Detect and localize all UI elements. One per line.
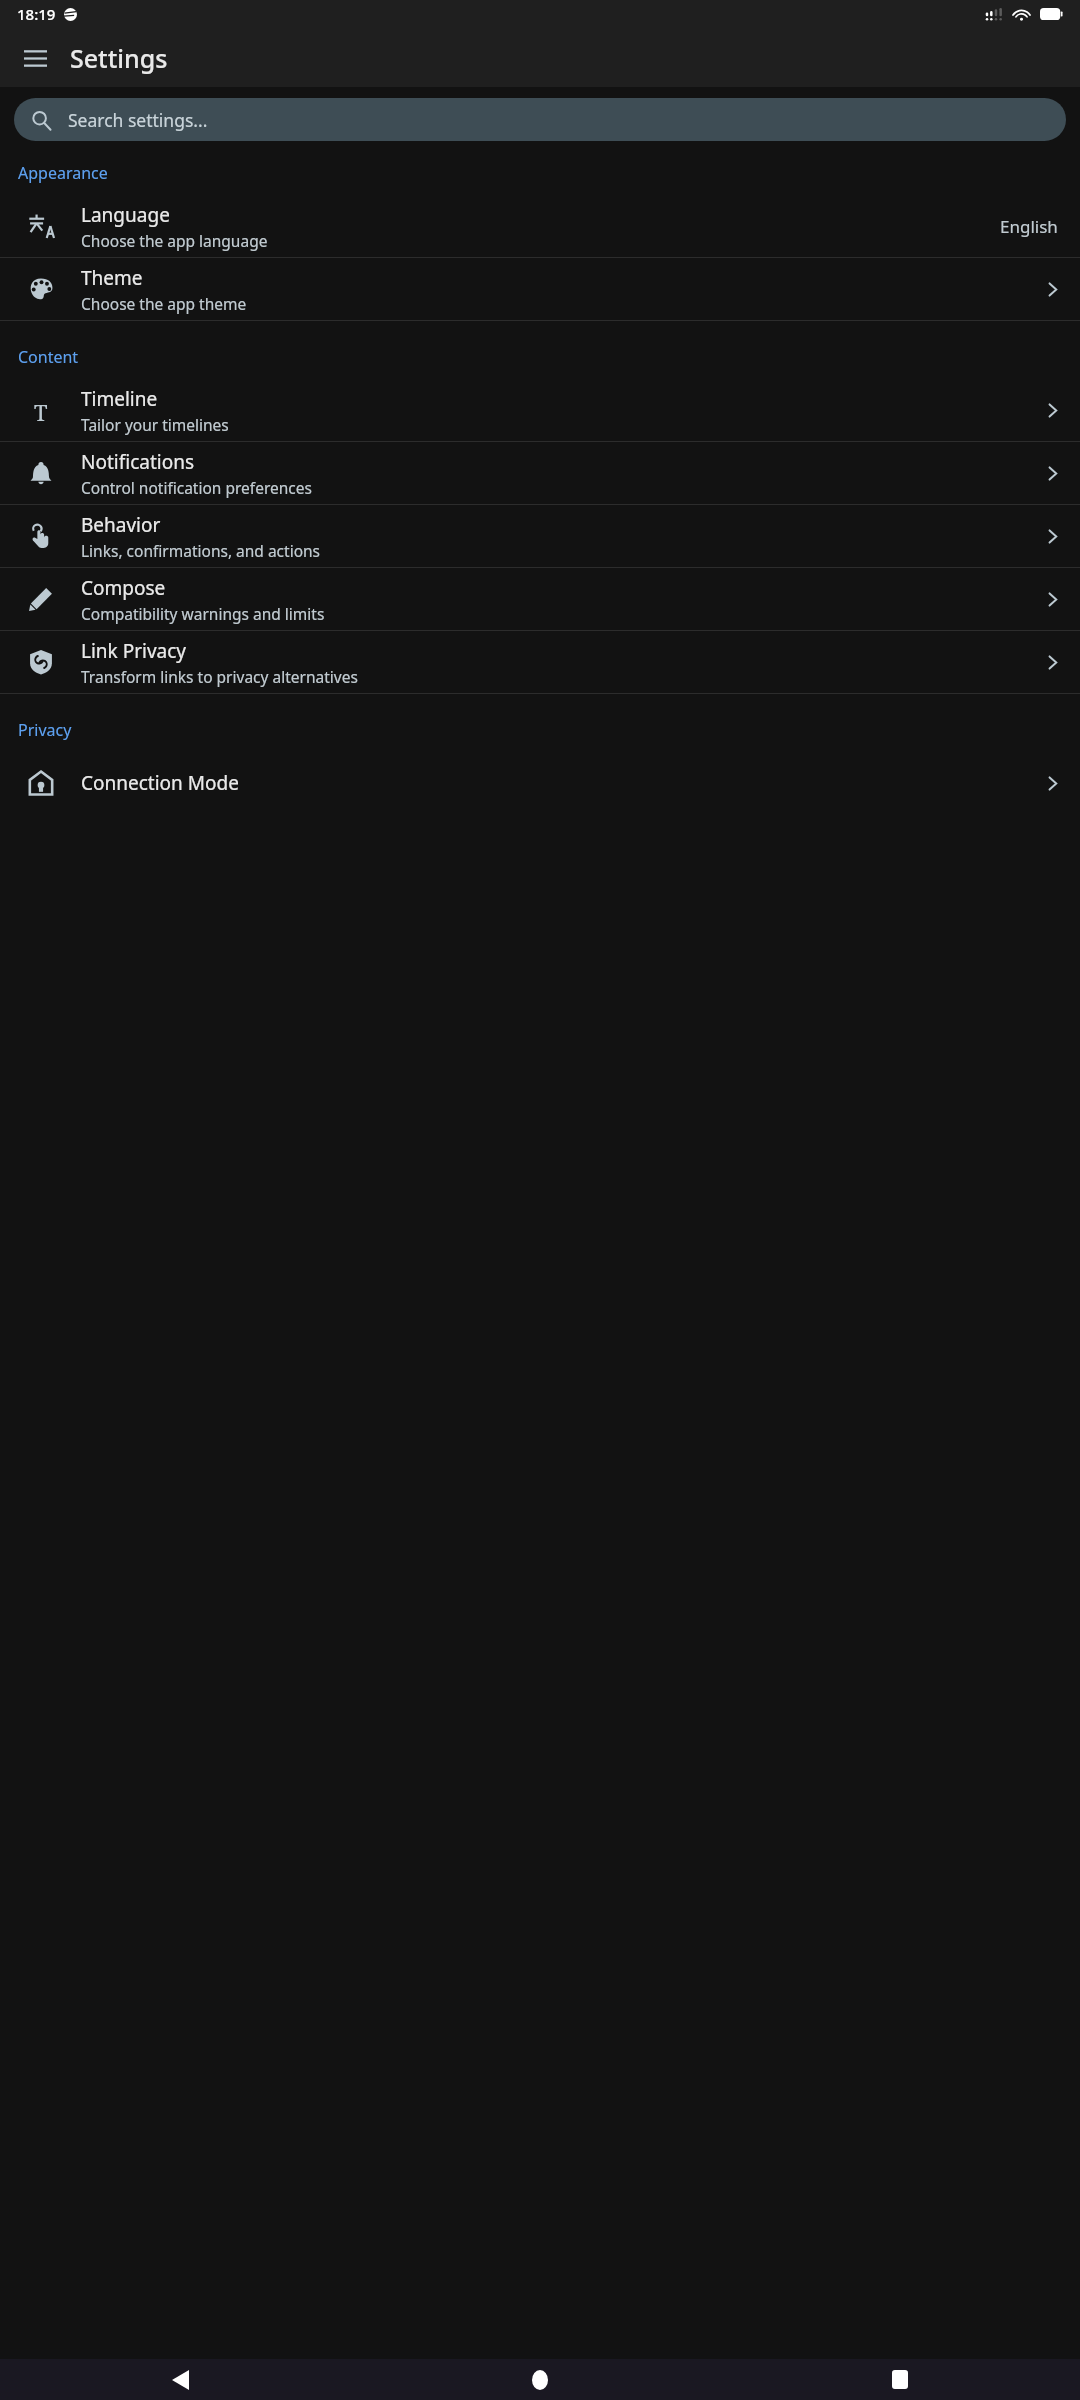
- staticText: Choose the app theme: [81, 293, 247, 314]
- staticText: Search settings...: [68, 108, 208, 132]
- staticText: English: [1000, 215, 1058, 238]
- button[interactable]: Theme: [0, 258, 1080, 320]
- button[interactable]: Link Privacy: [0, 631, 1080, 693]
- staticText: Privacy: [18, 719, 72, 741]
- button[interactable]: Connection Mode: [0, 752, 1080, 814]
- staticText: Tailor your timelines: [81, 414, 229, 435]
- button[interactable]: Home: [360, 2359, 720, 2400]
- staticText: Theme: [81, 265, 143, 291]
- button[interactable]: Compose: [0, 568, 1080, 630]
- button[interactable]: Recent apps: [720, 2359, 1080, 2400]
- staticText: Notifications: [81, 449, 195, 475]
- button[interactable]: T: [0, 379, 1080, 441]
- staticText: Behavior: [81, 512, 161, 538]
- button[interactable]: Back: [0, 2359, 360, 2400]
- staticText: Settings: [70, 41, 168, 75]
- staticText: Transform links to privacy alternatives: [81, 666, 358, 687]
- button[interactable]: Open navigation menu: [11, 34, 59, 82]
- staticText: Choose the app language: [81, 230, 268, 251]
- staticText: 18:19: [17, 4, 56, 24]
- staticText: Control notification preferences: [81, 477, 312, 498]
- staticText: Links, confirmations, and actions: [81, 540, 321, 561]
- button[interactable]: Behavior: [0, 505, 1080, 567]
- staticText: Appearance: [18, 162, 108, 184]
- staticText: Content: [18, 346, 79, 368]
- staticText: Link Privacy: [81, 638, 187, 664]
- staticText: Language: [81, 202, 170, 228]
- button[interactable]: Notifications: [0, 442, 1080, 504]
- button[interactable]: Language: [0, 195, 1080, 257]
- staticText: Compatibility warnings and limits: [81, 603, 325, 624]
- staticText: Timeline: [81, 386, 158, 412]
- staticText: Connection Mode: [81, 770, 239, 796]
- staticText: Compose: [81, 575, 166, 601]
- staticText: T: [34, 397, 48, 423]
- button[interactable]: Search settings...: [14, 98, 1066, 141]
